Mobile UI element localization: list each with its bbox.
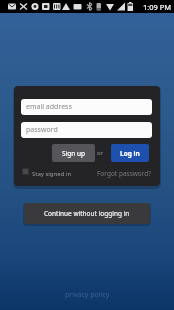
button[interactable]: password [21, 122, 152, 138]
staticText: Continue without logging in [44, 209, 130, 218]
button[interactable]: Stay signed in [22, 167, 68, 176]
staticText: 1:09 PM [143, 2, 172, 12]
staticText: or [97, 149, 104, 157]
button[interactable]: email address [21, 99, 152, 115]
staticText: email address [26, 102, 72, 112]
button[interactable]: Log in [111, 144, 149, 162]
staticText: Log in [120, 149, 140, 158]
staticText: Forgot password? [97, 169, 152, 178]
staticText: Sign up [62, 149, 85, 158]
button[interactable]: Continue without logging in [24, 203, 150, 224]
staticText: password [26, 125, 58, 135]
button[interactable]: Forgot password? [97, 169, 152, 178]
staticText: privacy policy [65, 290, 110, 300]
staticText: Stay signed in [32, 170, 72, 178]
button[interactable]: Sign up [52, 144, 95, 162]
button[interactable]: privacy policy [65, 290, 110, 300]
